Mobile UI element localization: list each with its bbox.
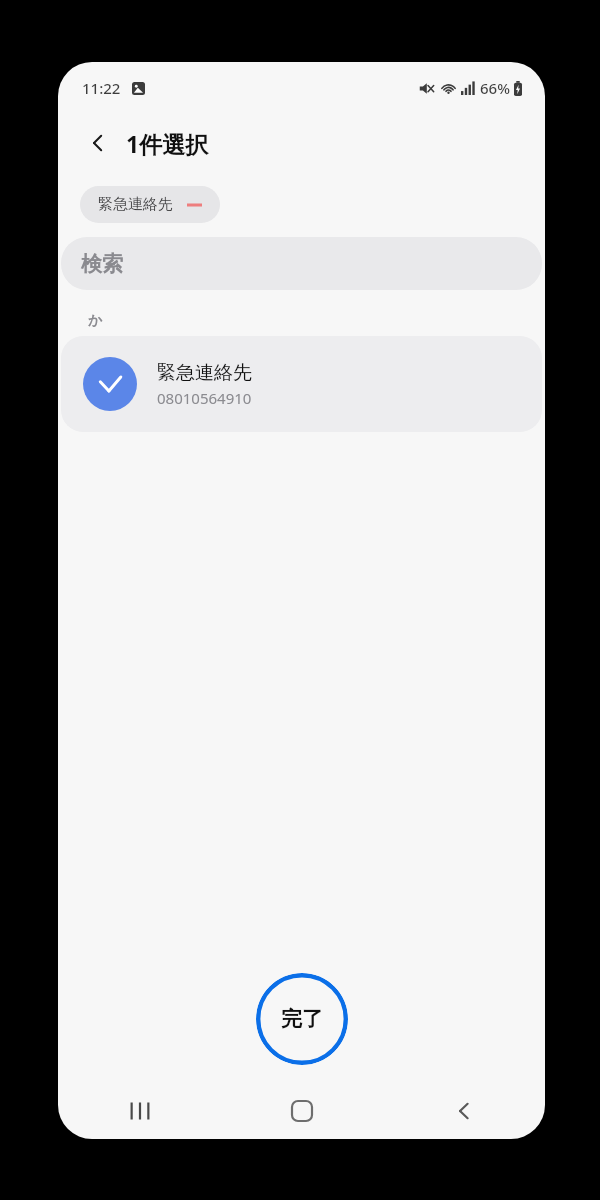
staticText: 1件選択 (126, 128, 209, 159)
button[interactable]: Home (221, 1083, 383, 1139)
button[interactable]: 検索 (61, 237, 542, 290)
button[interactable]: 緊急連絡先 (80, 186, 220, 223)
staticText: 緊急連絡先 (157, 361, 252, 385)
staticText: 検索 (81, 251, 123, 277)
button[interactable]: Recents (58, 1083, 221, 1139)
staticText: 11:22 (82, 78, 121, 98)
button[interactable]: 緊急連絡先 (61, 336, 542, 432)
button[interactable]: 完了 (256, 973, 348, 1065)
staticText: 66% (480, 78, 510, 98)
button[interactable]: Back (76, 121, 120, 165)
button[interactable]: Back (383, 1083, 545, 1139)
staticText: 08010564910 (157, 388, 252, 408)
staticText: か (88, 312, 103, 330)
staticText: 緊急連絡先 (98, 195, 173, 214)
staticText: 完了 (281, 1006, 323, 1032)
